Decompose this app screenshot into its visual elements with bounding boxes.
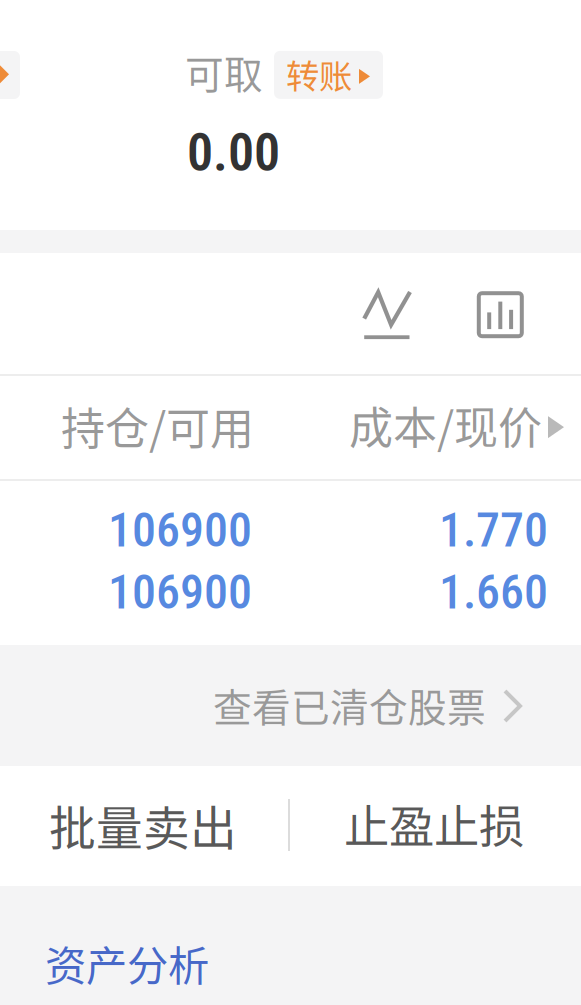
staticText: 止盈止损 <box>344 791 524 857</box>
button[interactable]: Line chart <box>362 290 412 340</box>
staticText: 持仓/可用 <box>61 394 254 458</box>
button[interactable]: Bank transfer <box>0 51 20 99</box>
button[interactable]: 资产分析 <box>45 933 265 1005</box>
staticText: 0.00 <box>187 122 280 183</box>
staticText: 1.770 <box>439 502 548 558</box>
button[interactable]: Bar chart <box>477 291 524 338</box>
button[interactable]: 成本/现价 <box>339 396 552 454</box>
staticText: 成本/现价 <box>349 393 542 457</box>
staticText: 106900 <box>108 564 252 620</box>
staticText: 转账 <box>286 50 352 98</box>
button[interactable]: 批量卖出 <box>0 766 288 886</box>
button[interactable]: 转账 <box>274 51 383 99</box>
button[interactable]: 查看已清仓股票 <box>213 645 553 766</box>
staticText: 查看已清仓股票 <box>213 677 486 733</box>
staticText: 106900 <box>108 502 252 558</box>
staticText: 可取 <box>185 44 263 100</box>
staticText: 批量卖出 <box>49 791 237 859</box>
button[interactable]: 止盈止损 <box>290 766 581 886</box>
staticText: 资产分析 <box>45 933 209 993</box>
staticText: 1.660 <box>439 564 548 620</box>
